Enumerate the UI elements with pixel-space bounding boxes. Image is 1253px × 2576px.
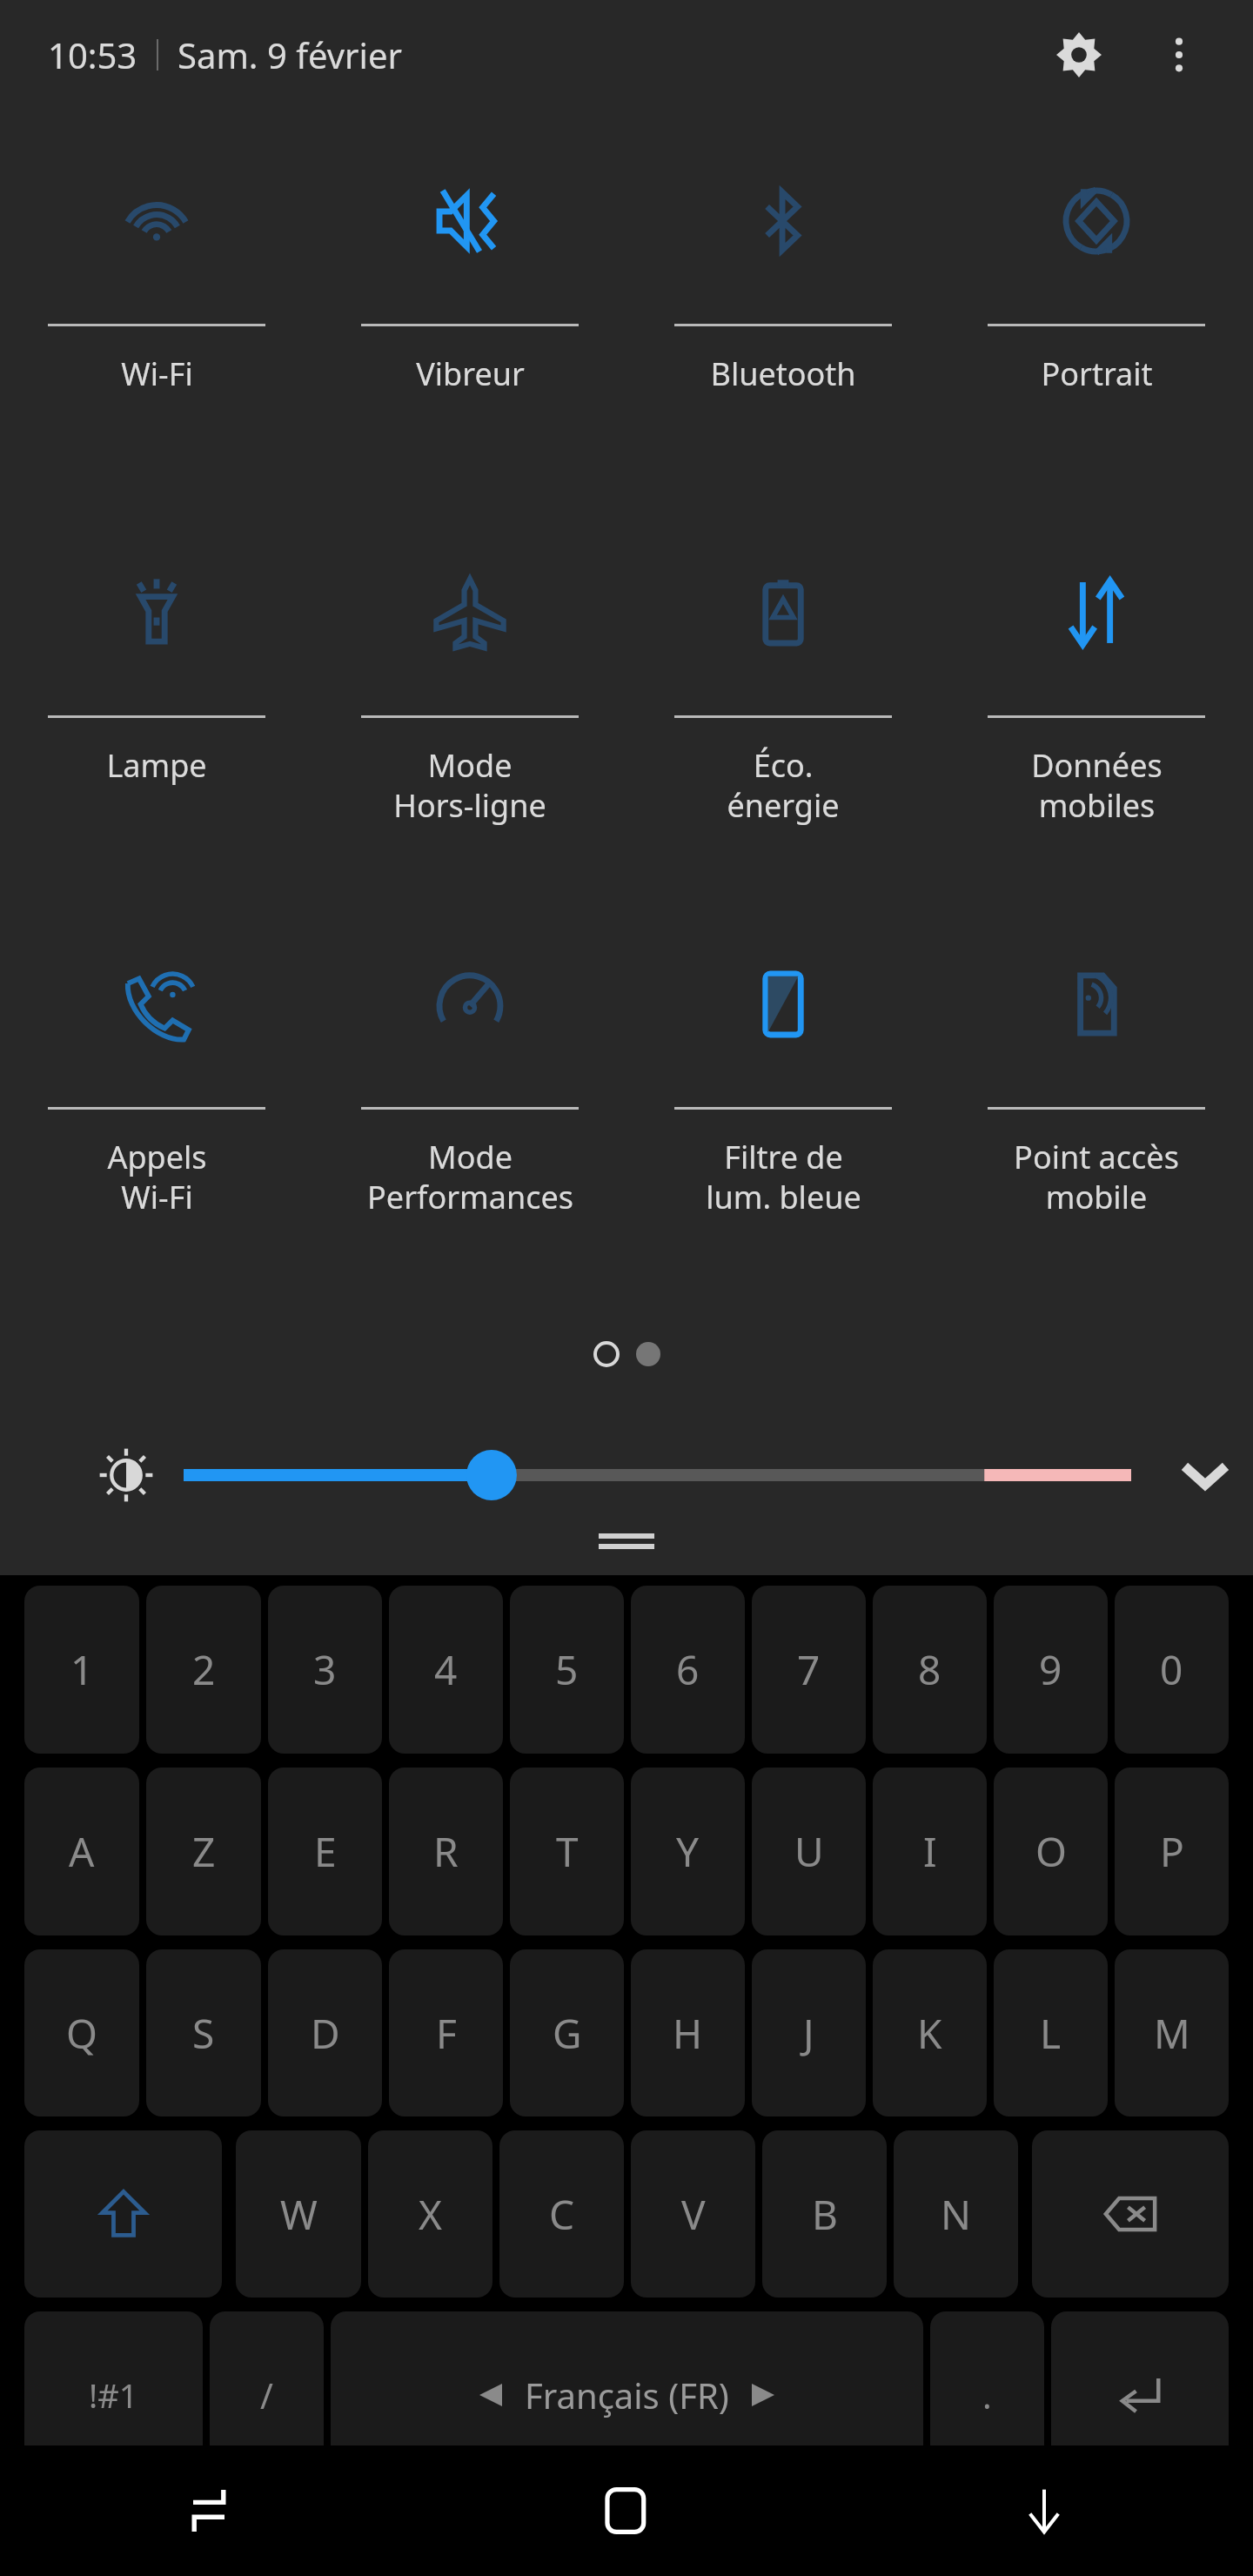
button[interactable]: C: [499, 2130, 624, 2298]
button[interactable]: .: [930, 2311, 1044, 2479]
button[interactable]: I: [873, 1768, 987, 1935]
button[interactable]: X: [368, 2130, 492, 2298]
button[interactable]: W: [236, 2130, 361, 2298]
staticText: Lampe: [106, 744, 207, 787]
staticText: I: [923, 1824, 937, 1879]
staticText: U: [794, 1824, 824, 1879]
button[interactable]: E: [268, 1768, 382, 1935]
staticText: Filtre de lum. bleue: [706, 1136, 861, 1218]
button[interactable]: Filtre de lum. bleue: [626, 940, 940, 1288]
button[interactable]: L: [994, 1949, 1108, 2116]
button[interactable]: Données mobiles: [940, 548, 1253, 896]
button[interactable]: 7: [752, 1586, 866, 1754]
button[interactable]: Entrée: [1051, 2311, 1229, 2479]
button[interactable]: Applications récentes: [0, 2445, 418, 2576]
button[interactable]: Masquer le clavier: [835, 2445, 1253, 2576]
button[interactable]: Paramètres: [1037, 13, 1121, 97]
staticText: Bluetooth: [710, 352, 856, 395]
button[interactable]: 6: [631, 1586, 745, 1754]
staticText: W: [280, 2187, 318, 2242]
staticText: Appels Wi-Fi: [107, 1136, 207, 1218]
button[interactable]: 8: [873, 1586, 987, 1754]
button[interactable]: H: [631, 1949, 745, 2116]
button[interactable]: S: [146, 1949, 261, 2116]
staticText: F: [436, 2006, 457, 2061]
button[interactable]: D: [268, 1949, 382, 2116]
staticText: 9: [1039, 1642, 1062, 1697]
button[interactable]: R: [389, 1768, 503, 1935]
staticText: X: [419, 2187, 442, 2242]
button[interactable]: Accueil: [418, 2445, 835, 2576]
button[interactable]: T: [510, 1768, 624, 1935]
button[interactable]: [184, 1436, 1131, 1514]
button[interactable]: U: [752, 1768, 866, 1935]
button[interactable]: Lampe: [0, 548, 313, 896]
staticText: Point accès mobile: [1014, 1136, 1179, 1218]
button[interactable]: Mode Hors-ligne: [313, 548, 626, 896]
button[interactable]: Z: [146, 1768, 261, 1935]
button[interactable]: 5: [510, 1586, 624, 1754]
button[interactable]: J: [752, 1949, 866, 2116]
button[interactable]: B: [762, 2130, 887, 2298]
staticText: 10:53: [48, 31, 137, 78]
button[interactable]: !#1: [24, 2311, 203, 2479]
button[interactable]: V: [631, 2130, 755, 2298]
button[interactable]: 3: [268, 1586, 382, 1754]
staticText: N: [941, 2187, 971, 2242]
button[interactable]: Point accès mobile: [940, 940, 1253, 1288]
button[interactable]: M: [1115, 1949, 1229, 2116]
staticText: Wi-Fi: [121, 352, 193, 395]
button[interactable]: P: [1115, 1768, 1229, 1935]
button[interactable]: Appels Wi-Fi: [0, 940, 313, 1288]
staticText: 8: [918, 1642, 941, 1697]
staticText: 4: [434, 1642, 458, 1697]
button[interactable]: 1: [24, 1586, 139, 1754]
button[interactable]: Plus d'options: [1140, 16, 1218, 94]
button[interactable]: Q: [24, 1949, 139, 2116]
button[interactable]: 9: [994, 1586, 1108, 1754]
staticText: Y: [676, 1824, 700, 1879]
staticText: 3: [313, 1642, 337, 1697]
button[interactable]: Développer: [1157, 1427, 1253, 1523]
button[interactable]: O: [994, 1768, 1108, 1935]
staticText: G: [553, 2006, 582, 2061]
staticText: L: [1040, 2006, 1062, 2061]
staticText: Z: [192, 1824, 216, 1879]
staticText: V: [681, 2187, 706, 2242]
button[interactable]: N: [894, 2130, 1018, 2298]
staticText: B: [812, 2187, 838, 2242]
button[interactable]: Y: [631, 1768, 745, 1935]
staticText: Vibreur: [416, 352, 525, 395]
button[interactable]: Majuscule: [24, 2130, 222, 2298]
button[interactable]: 2: [146, 1586, 261, 1754]
button[interactable]: 0: [1115, 1586, 1229, 1754]
staticText: 1: [70, 1642, 94, 1697]
button[interactable]: F: [389, 1949, 503, 2116]
button[interactable]: /: [210, 2311, 324, 2479]
staticText: Q: [66, 2006, 97, 2061]
button[interactable]: Luminosité automatique: [91, 1440, 161, 1510]
button[interactable]: Supprimer: [1032, 2130, 1229, 2298]
button[interactable]: Bluetooth: [626, 157, 940, 505]
button[interactable]: A: [24, 1768, 139, 1935]
button[interactable]: G: [510, 1949, 624, 2116]
staticText: Mode Performances: [367, 1136, 573, 1218]
staticText: 5: [555, 1642, 579, 1697]
staticText: A: [69, 1824, 95, 1879]
staticText: C: [549, 2187, 575, 2242]
staticText: 0: [1160, 1642, 1183, 1697]
staticText: M: [1154, 2006, 1190, 2061]
staticText: O: [1035, 1824, 1067, 1879]
button[interactable]: K: [873, 1949, 987, 2116]
button[interactable]: Éco. énergie: [626, 548, 940, 896]
staticText: Portrait: [1041, 352, 1153, 395]
button[interactable]: Wi-Fi: [0, 157, 313, 505]
staticText: /: [260, 2371, 273, 2418]
button[interactable]: 4: [389, 1586, 503, 1754]
staticText: Mode Hors-ligne: [393, 744, 546, 827]
staticText: Éco. énergie: [727, 744, 840, 827]
button[interactable]: Portrait: [940, 157, 1253, 505]
button[interactable]: Mode Performances: [313, 940, 626, 1288]
button[interactable]: Français (FR): [331, 2311, 923, 2479]
button[interactable]: Vibreur: [313, 157, 626, 505]
